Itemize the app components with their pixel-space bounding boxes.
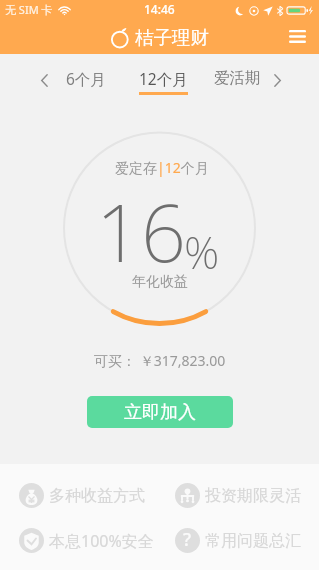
button[interactable]: Menu [282,21,312,51]
staticText: % [184,222,220,282]
staticText: 本息100%安全 [49,530,154,552]
staticText: ? [183,527,192,552]
staticText: 16 [96,178,187,286]
staticText: 立即加入 [124,401,196,424]
button[interactable]: Previous [33,69,55,91]
button[interactable]: 爱活期 [214,68,261,94]
button[interactable]: 本息100%安全 [19,528,154,553]
staticText: 常用问题总汇 [205,531,301,551]
button[interactable]: 立即加入 [87,396,233,428]
button[interactable]: 12个月 [139,68,188,95]
staticText: 6个月 [66,68,106,89]
button[interactable]: 投资期限灵活 [175,483,301,508]
button[interactable]: Next [266,69,288,91]
staticText: 多种收益方式 [49,486,145,506]
staticText: 爱定存|12个月 [115,158,209,177]
staticText: 爱活期 [214,68,261,88]
staticText: 桔子理财 [135,26,209,49]
staticText: 可买： ￥317,823.00 [94,351,226,370]
button[interactable]: ? [175,528,301,553]
staticText: 12个月 [139,68,188,89]
staticText: 无 SIM 卡 [5,2,53,17]
staticText: 14:46 [144,1,175,17]
button[interactable]: 多种收益方式 [19,483,145,508]
button[interactable]: 6个月 [66,68,106,95]
staticText: 投资期限灵活 [205,486,301,506]
staticText: 年化收益 [132,273,188,291]
